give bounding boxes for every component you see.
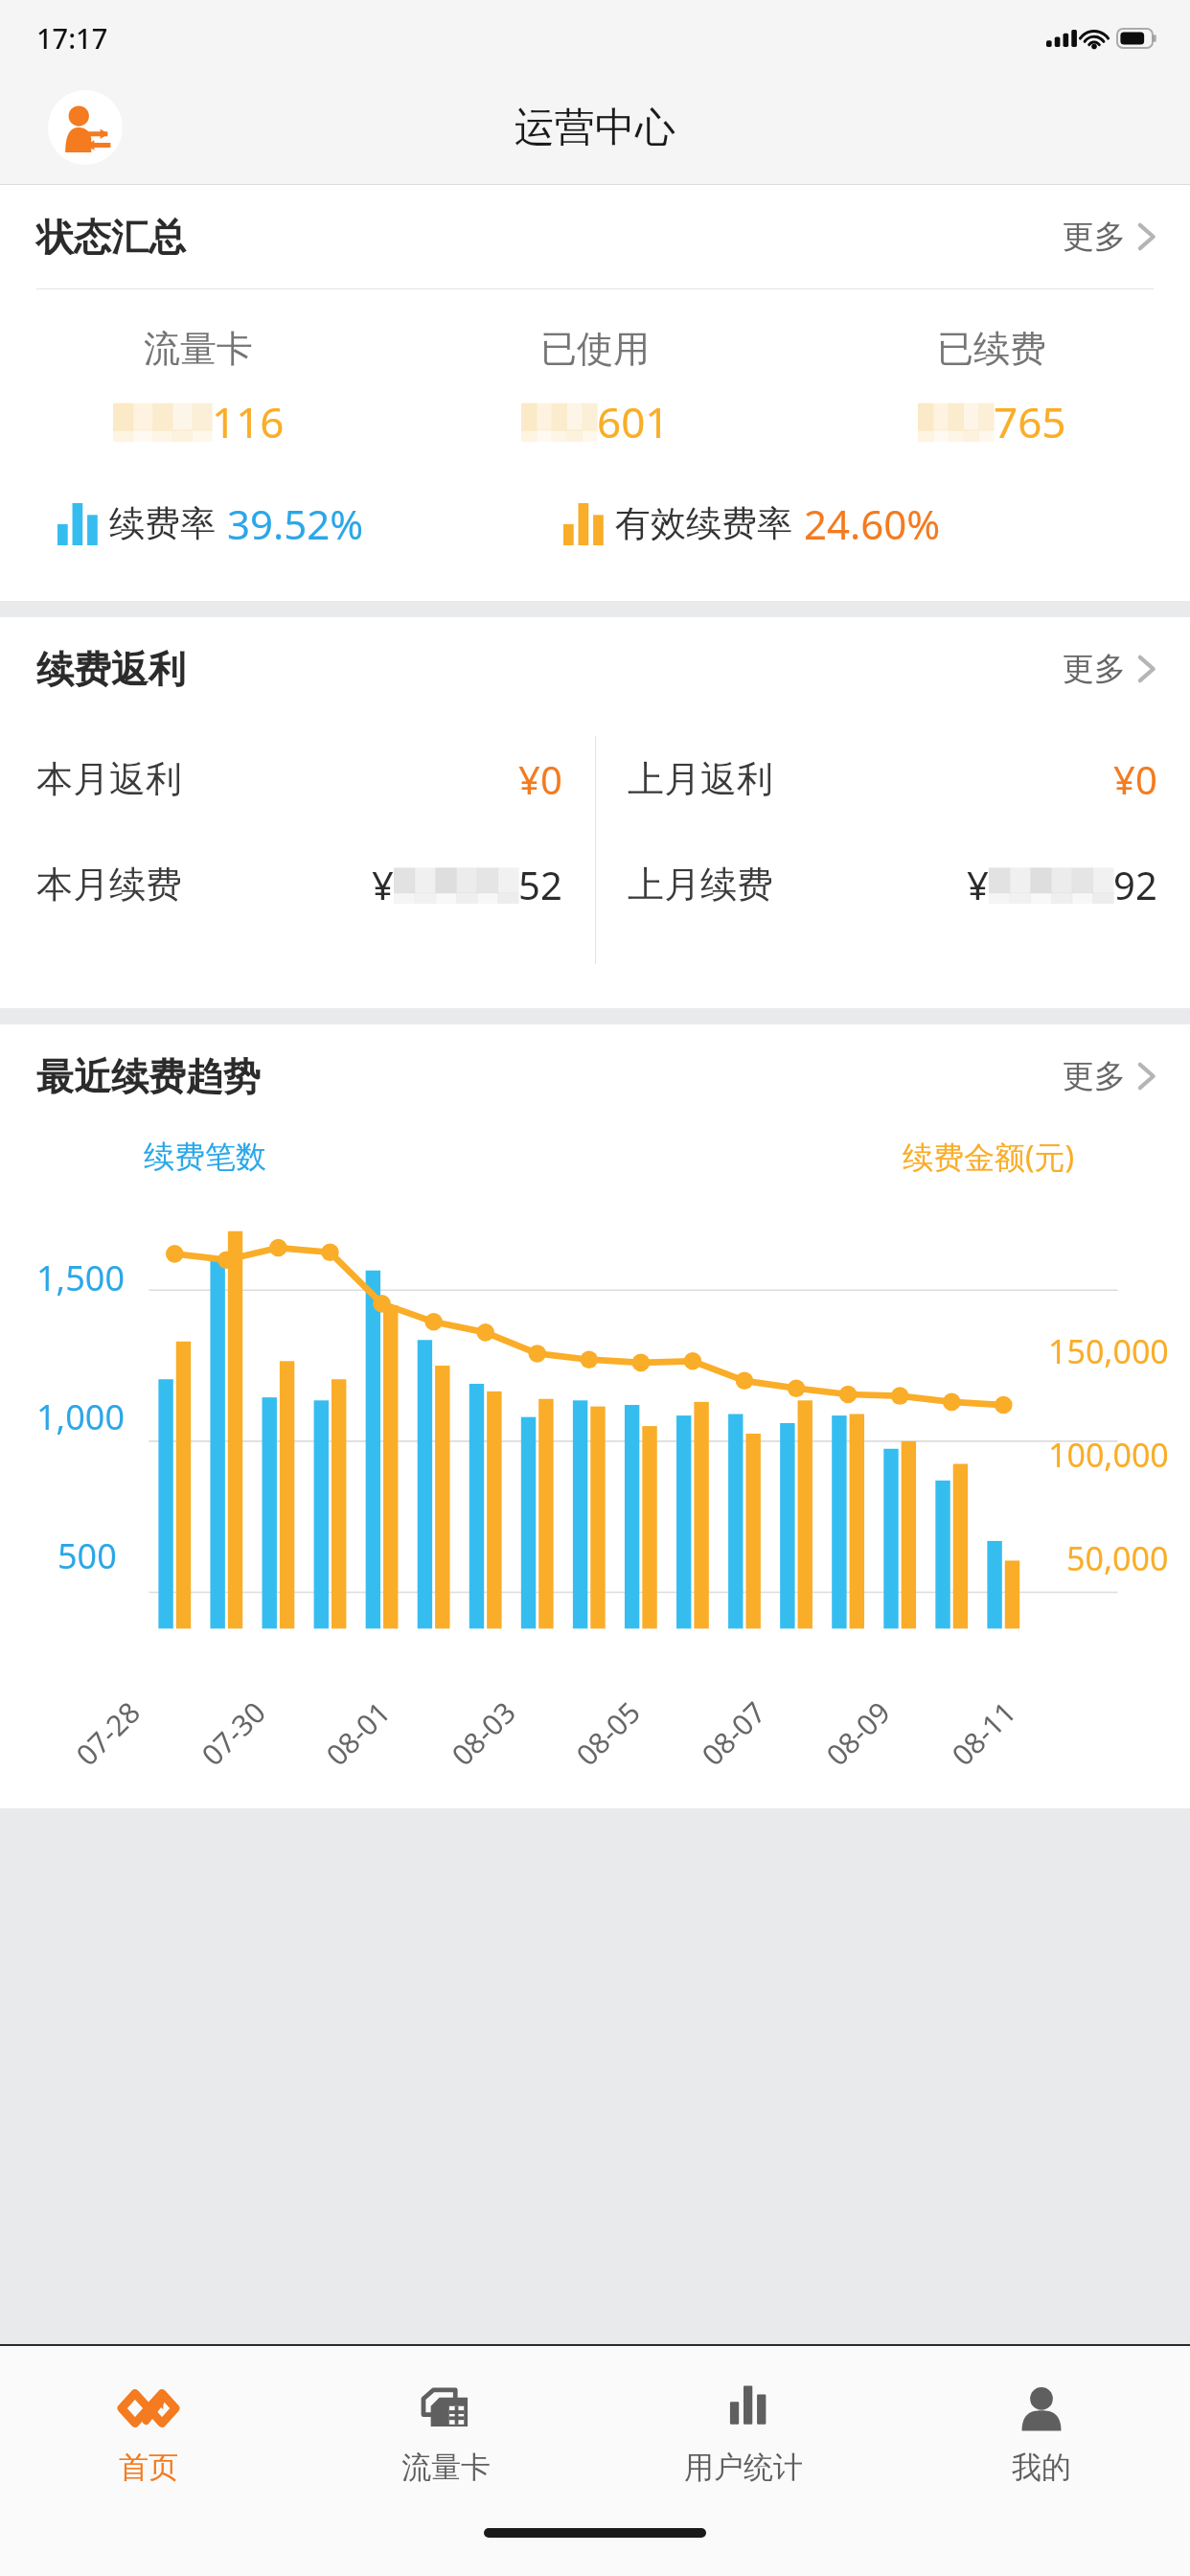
staticText: 状态汇总 (36, 214, 186, 261)
staticText: 已使用 (540, 326, 650, 372)
staticText: ¥0 (518, 753, 562, 805)
staticText: 07-30 (193, 1693, 274, 1774)
staticText: 601 (597, 393, 670, 450)
button[interactable]: 更多 (1057, 207, 1161, 266)
staticText: 92 (1113, 859, 1157, 910)
staticText: 流量卡 (401, 2449, 491, 2486)
staticText: 最近续费趋势 (36, 1053, 261, 1100)
button[interactable]: Account (48, 90, 123, 165)
button[interactable]: 续费率 (57, 496, 563, 551)
staticText: 116 (212, 393, 285, 450)
staticText: 08-09 (817, 1693, 899, 1774)
button[interactable]: 我的 (892, 2346, 1190, 2520)
staticText: 更多 (1063, 1056, 1126, 1096)
staticText: 已续费 (937, 326, 1046, 372)
staticText: 首页 (119, 2449, 178, 2486)
button[interactable]: 用户统计 (594, 2346, 892, 2520)
staticText: 08-05 (567, 1693, 649, 1774)
button[interactable]: 有效续费率 (563, 496, 1161, 551)
staticText: 本月续费 (36, 862, 182, 908)
staticText: 续费率 (109, 501, 216, 546)
staticText: 运营中心 (515, 103, 675, 153)
staticText: 08-07 (693, 1693, 774, 1774)
staticText: 17:17 (36, 19, 108, 57)
button[interactable]: 流量卡 (297, 2346, 594, 2520)
staticText: 765 (994, 393, 1066, 450)
staticText: ¥ (967, 859, 989, 910)
staticText: 续费返利 (36, 646, 186, 693)
button[interactable]: 首页 (0, 2346, 297, 2520)
staticText: 上月续费 (628, 862, 773, 908)
staticText: 08-03 (443, 1693, 524, 1774)
staticText: ¥0 (1113, 753, 1157, 805)
staticText: 100,000 (1048, 1433, 1169, 1477)
staticText: 39.52% (227, 496, 364, 551)
staticText: 500 (57, 1532, 117, 1579)
staticText: 24.60% (804, 496, 941, 551)
staticText: 08-11 (943, 1693, 1024, 1774)
staticText: 更多 (1063, 217, 1126, 257)
staticText: 续费笔数 (144, 1138, 266, 1176)
staticText: 150,000 (1048, 1329, 1169, 1373)
staticText: 更多 (1063, 649, 1126, 689)
staticText: 1,500 (36, 1254, 126, 1301)
button[interactable]: 更多 (1057, 639, 1161, 699)
staticText: 流量卡 (144, 326, 253, 372)
staticText: 1,000 (36, 1393, 126, 1440)
staticText: 50,000 (1066, 1536, 1169, 1580)
staticText: 08-01 (317, 1693, 399, 1774)
staticText: 本月返利 (36, 756, 182, 802)
staticText: 用户统计 (684, 2449, 803, 2486)
staticText: 52 (518, 859, 562, 910)
staticText: 续费金额(元) (903, 1136, 1075, 1178)
staticText: 07-28 (67, 1693, 149, 1774)
staticText: 我的 (1012, 2449, 1071, 2486)
staticText: 有效续费率 (615, 501, 792, 546)
button[interactable]: 更多 (1057, 1046, 1161, 1106)
staticText: ¥ (372, 859, 394, 910)
staticText: 上月返利 (628, 756, 773, 802)
